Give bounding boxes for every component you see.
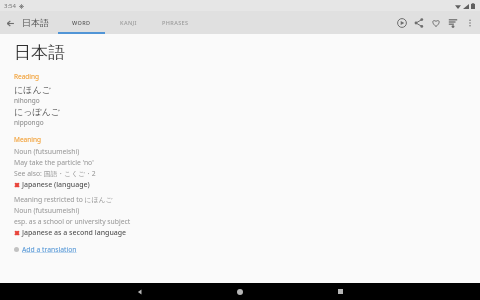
staticText: esp. as a school or university subject (14, 217, 131, 226)
staticText: See also: 国語・こくご・2 (14, 169, 96, 178)
button[interactable]: Share (410, 14, 427, 31)
staticText: PHRASES (162, 19, 189, 26)
staticText: Noun (futsuumeishi) (14, 147, 80, 156)
staticText: Noun (futsuumeishi) (14, 206, 80, 215)
button[interactable]: Sort (444, 14, 461, 31)
staticText: Japanese (language) (22, 180, 90, 190)
staticText: May take the particle 'no' (14, 158, 94, 167)
staticText: Add a translation (22, 245, 77, 254)
staticText: 日本語 (14, 42, 65, 63)
staticText: 日本語 (22, 17, 49, 28)
button[interactable]: KANJI (105, 11, 152, 34)
staticText: WORD (72, 19, 91, 26)
staticText: にほんご (14, 84, 51, 95)
staticText: にっぽんご (14, 106, 61, 117)
staticText: nihongo (14, 96, 40, 105)
button[interactable]: Back (0, 13, 20, 33)
staticText: Meaning (14, 135, 41, 144)
staticText: Reading (14, 72, 40, 81)
button[interactable]: Back (90, 283, 190, 300)
button[interactable]: Add a translation (14, 244, 77, 255)
button[interactable]: More options (461, 14, 478, 31)
staticText: nippongo (14, 118, 44, 127)
staticText: KANJI (120, 19, 137, 26)
staticText: 3:54 (4, 2, 16, 10)
button[interactable]: PHRASES (152, 11, 199, 34)
button[interactable]: Recent apps (290, 283, 390, 300)
button[interactable]: Home (190, 283, 290, 300)
button[interactable]: Favorite (427, 14, 444, 31)
staticText: Meaning restricted to にほんご (14, 195, 113, 204)
button[interactable]: Play (393, 14, 410, 31)
button[interactable]: WORD (58, 11, 105, 34)
staticText: Japanese as a second language (22, 228, 127, 238)
